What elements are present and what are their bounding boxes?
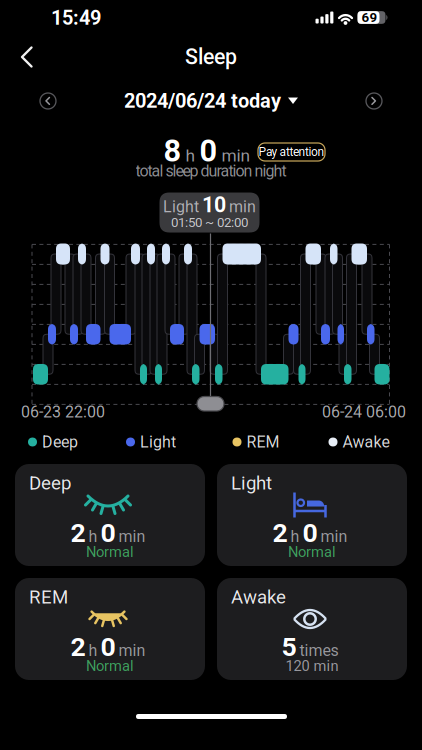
staticText: h <box>185 146 195 165</box>
button[interactable] <box>364 91 384 111</box>
staticText: Pay attention <box>258 145 324 159</box>
staticText: Light <box>163 198 199 216</box>
staticText: total sleep duration night <box>135 162 286 180</box>
staticText: Deep <box>42 433 78 451</box>
staticText: 0 <box>199 133 217 168</box>
staticText: h <box>88 527 97 546</box>
staticText: h <box>290 527 299 546</box>
staticText: Deep <box>29 472 71 494</box>
staticText: 06-24 06:00 <box>322 403 406 421</box>
button[interactable]: 2024/06/24 today <box>124 90 298 112</box>
staticText: 5 <box>281 632 296 662</box>
staticText: 0 <box>302 518 317 548</box>
staticText: Sleep <box>185 45 237 69</box>
staticText: 120 min <box>285 658 338 674</box>
staticText: 10 <box>202 193 226 217</box>
staticText: 2 <box>272 518 287 548</box>
staticText: times <box>299 641 338 660</box>
staticText: 01:50 ~ 02:00 <box>171 215 248 230</box>
staticText: Awake <box>231 586 286 608</box>
staticText: min <box>118 527 145 546</box>
staticText: 2024/06/24 today <box>124 90 281 112</box>
staticText: 0 <box>100 518 115 548</box>
staticText: min <box>320 527 347 546</box>
staticText: 69 <box>361 10 377 25</box>
button[interactable]: Deep <box>15 464 205 566</box>
button[interactable]: REM <box>15 578 205 680</box>
staticText: 06-23 22:00 <box>21 403 105 421</box>
staticText: min <box>229 198 256 216</box>
staticText: Awake <box>342 433 389 451</box>
staticText: min <box>118 641 145 660</box>
staticText: Normal <box>86 544 134 560</box>
staticText: 2 <box>70 518 85 548</box>
staticText: REM <box>29 586 68 608</box>
staticText: h <box>88 641 97 660</box>
staticText: min <box>221 146 250 165</box>
staticText: Normal <box>288 544 336 560</box>
staticText: REM <box>246 433 279 451</box>
staticText: Light <box>231 472 272 494</box>
staticText: 8 <box>163 133 181 168</box>
button[interactable]: Awake <box>217 578 407 680</box>
button[interactable] <box>197 396 224 411</box>
button[interactable] <box>20 47 33 67</box>
staticText: 15:49 <box>51 7 101 29</box>
button[interactable] <box>38 91 58 111</box>
staticText: Normal <box>86 658 134 674</box>
staticText: 0 <box>100 632 115 662</box>
button[interactable]: Light <box>217 464 407 566</box>
staticText: 2 <box>70 632 85 662</box>
staticText: Light <box>140 433 176 451</box>
